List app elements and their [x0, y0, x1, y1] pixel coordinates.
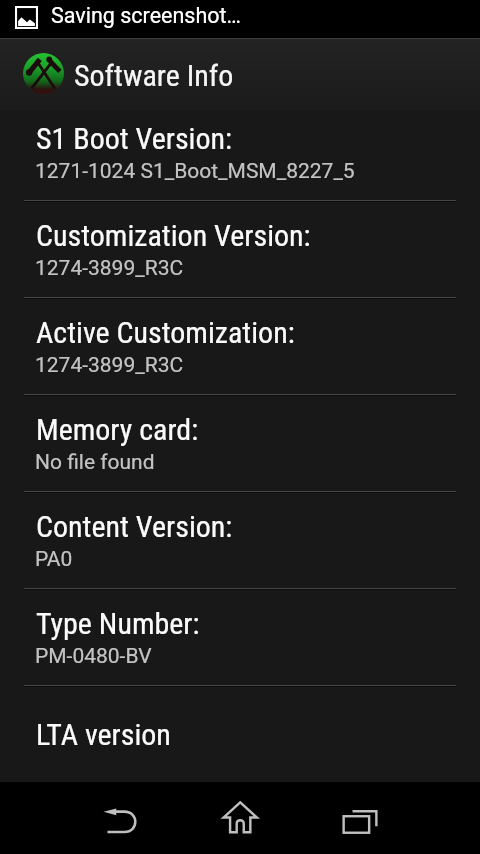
button[interactable]: Memory card: — [0, 394, 480, 491]
staticText: LTA version — [36, 717, 171, 752]
button[interactable]: S1 Boot Version: — [0, 103, 480, 200]
button[interactable]: Home — [180, 782, 300, 854]
staticText: No file found — [35, 450, 155, 475]
staticText: Memory card: — [36, 412, 199, 447]
staticText: 1271-1024 S1_Boot_MSM_8227_5 — [35, 159, 355, 184]
staticText: Type Number: — [36, 606, 200, 641]
staticText: Active Customization: — [36, 315, 295, 350]
button[interactable]: Type Number: — [0, 588, 480, 685]
staticText: Software Info — [74, 58, 234, 93]
button[interactable]: Back — [60, 782, 180, 854]
staticText: Customization Version: — [36, 218, 311, 253]
staticText: 1274-3899_R3C — [35, 256, 184, 281]
staticText: Saving screenshot… — [51, 3, 241, 28]
button[interactable]: Recent apps — [300, 782, 420, 854]
button[interactable]: Content Version: — [0, 491, 480, 588]
staticText: S1 Boot Version: — [36, 121, 233, 156]
staticText: 1274-3899_R3C — [35, 353, 184, 378]
staticText: PM-0480-BV — [35, 644, 152, 669]
staticText: PA0 — [35, 547, 73, 572]
button[interactable]: Active Customization: — [0, 297, 480, 394]
staticText: Content Version: — [36, 509, 233, 544]
button[interactable]: LTA version — [0, 685, 480, 782]
button[interactable]: Customization Version: — [0, 200, 480, 297]
